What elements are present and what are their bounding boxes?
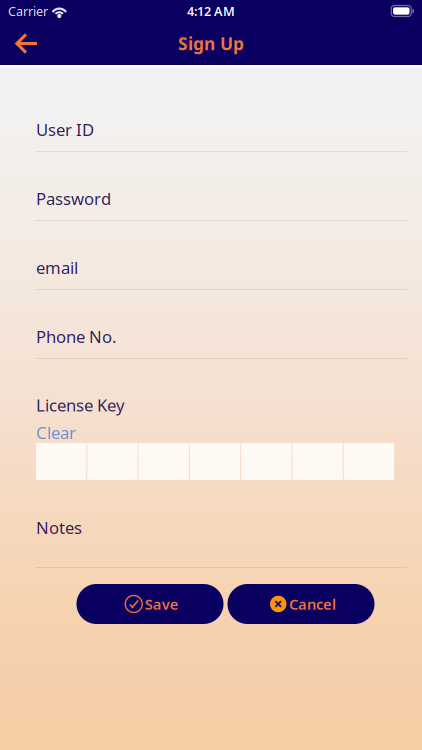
staticText: Notes (36, 516, 82, 539)
button[interactable]: User ID (36, 83, 407, 152)
staticText: Phone No. (36, 325, 116, 348)
staticText: Sign Up (178, 32, 244, 55)
staticText: User ID (36, 118, 94, 141)
button[interactable]: Cancel (227, 584, 374, 624)
staticText: 4:12 AM (187, 2, 235, 20)
button[interactable]: email (36, 221, 407, 290)
button[interactable]: Password (36, 152, 407, 221)
button[interactable]: Clear (36, 421, 76, 444)
staticText: Carrier (8, 2, 48, 20)
staticText: License Key (36, 394, 125, 416)
button[interactable]: Back (2, 25, 52, 61)
staticText: Password (36, 187, 111, 210)
staticText: Cancel (289, 594, 336, 614)
staticText: Save (145, 594, 179, 614)
staticText: Clear (36, 421, 76, 444)
button[interactable]: Phone No. (36, 290, 407, 359)
staticText: email (36, 256, 78, 279)
button[interactable]: Save (76, 584, 223, 624)
